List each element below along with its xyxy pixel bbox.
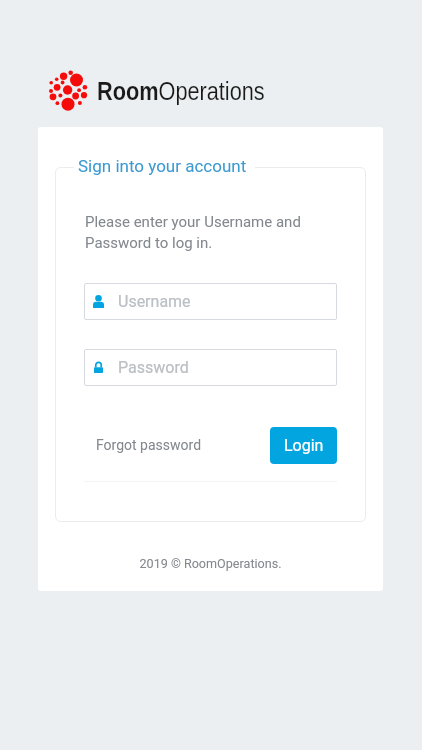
button[interactable]: Password bbox=[84, 349, 337, 386]
button[interactable]: Login bbox=[270, 427, 337, 464]
button[interactable]: Username bbox=[84, 283, 337, 320]
button[interactable]: Forgot password bbox=[92, 433, 206, 457]
staticText: RoomOperations bbox=[97, 76, 265, 105]
staticText: Login bbox=[284, 436, 324, 455]
staticText: Password bbox=[118, 358, 189, 377]
staticText: Username bbox=[118, 292, 191, 311]
staticText: Sign into your account bbox=[78, 156, 247, 176]
staticText: Forgot password bbox=[96, 437, 202, 453]
staticText: 2019 © RoomOperations. bbox=[139, 556, 282, 571]
staticText: Please enter your Username and Password … bbox=[85, 213, 325, 252]
